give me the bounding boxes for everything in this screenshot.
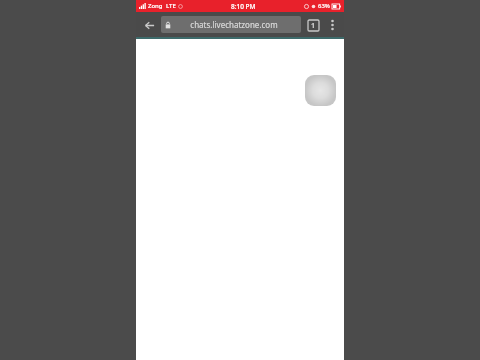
staticText: chats.livechatzone.com — [171, 19, 297, 30]
staticText: Zong — [148, 2, 163, 10]
button[interactable]: More options — [323, 16, 341, 34]
button[interactable]: Back — [139, 15, 159, 35]
button[interactable]: chats.livechatzone.com — [161, 16, 301, 33]
staticText: 63% — [318, 2, 330, 10]
button[interactable]: Switch tabs — [304, 16, 322, 34]
staticText: 8:10 PM — [231, 2, 256, 11]
staticText: LTE — [166, 2, 176, 10]
staticText: 1 — [311, 21, 316, 31]
